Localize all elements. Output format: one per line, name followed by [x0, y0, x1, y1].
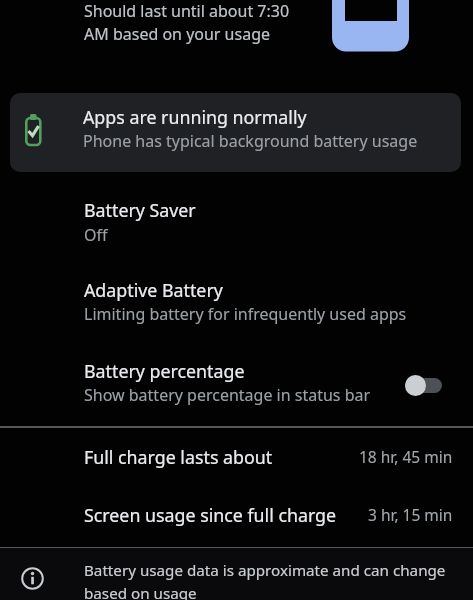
button[interactable]: Screen usage since full charge — [0, 495, 473, 543]
button[interactable]: Adaptive Battery — [0, 270, 473, 332]
staticText: Battery Saver — [84, 198, 196, 222]
button[interactable]: Apps are running normally — [10, 93, 461, 172]
staticText: Phone has typical background battery usa… — [83, 130, 418, 152]
staticText: Show battery percentage in status bar — [84, 384, 371, 406]
staticText: Battery percentage — [84, 359, 245, 383]
staticText: 3 hr, 15 min — [368, 504, 453, 525]
staticText: Should last until about 7:30 AM based on… — [84, 0, 290, 45]
staticText: 18 hr, 45 min — [359, 446, 453, 467]
staticText: Off — [84, 224, 108, 246]
staticText: Limiting battery for infrequently used a… — [84, 303, 407, 325]
button[interactable]: Battery percentage — [0, 350, 473, 414]
staticText: Screen usage since full charge — [84, 503, 337, 527]
button[interactable]: Battery Saver — [0, 190, 473, 252]
button[interactable]: Full charge lasts about — [0, 437, 473, 485]
staticText: Apps are running normally — [83, 105, 307, 129]
staticText: Full charge lasts about — [84, 445, 273, 469]
staticText: Battery usage data is approximate and ca… — [84, 560, 446, 600]
staticText: Adaptive Battery — [84, 278, 223, 302]
